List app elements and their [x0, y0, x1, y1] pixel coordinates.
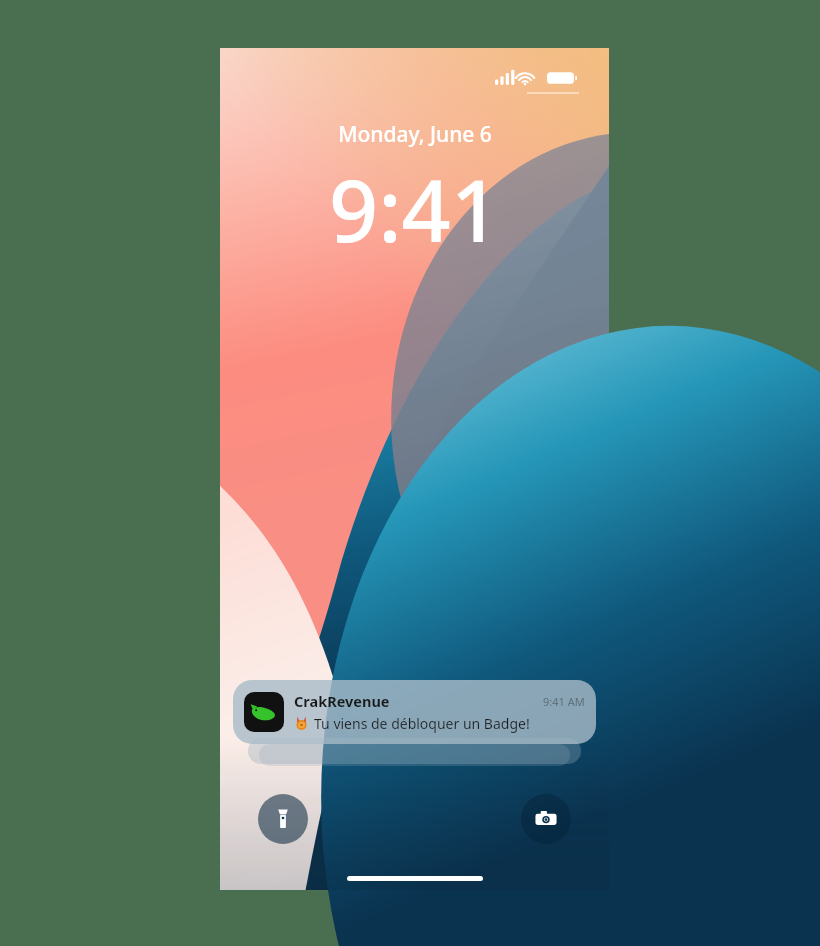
- button[interactable]: CrakRevenue: [233, 680, 596, 744]
- button[interactable]: Flashlight: [258, 794, 308, 844]
- staticText: 9:41 AM: [543, 694, 585, 709]
- staticText: Monday, June 6: [338, 120, 492, 149]
- staticText: Tu viens de débloquer un Badge!: [314, 714, 530, 733]
- button[interactable]: Camera: [521, 794, 571, 844]
- staticText: 9:41: [329, 150, 500, 267]
- staticText: CrakRevenue: [294, 691, 543, 711]
